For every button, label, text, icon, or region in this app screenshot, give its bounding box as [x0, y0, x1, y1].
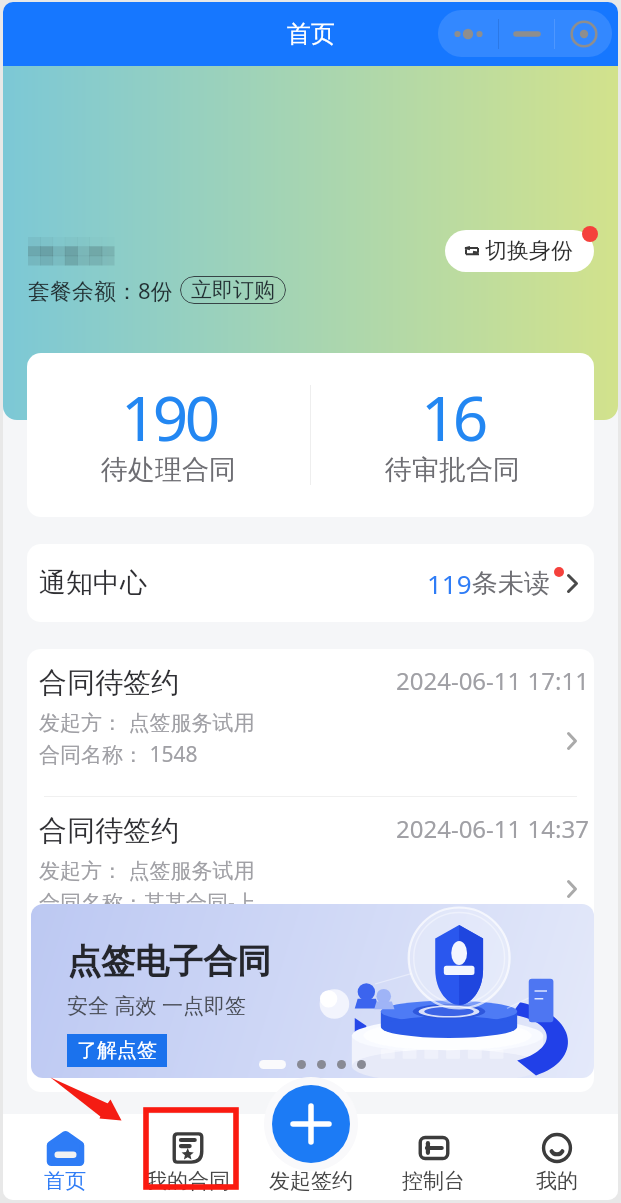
staticText: 合同名称：某某合同-下: [39, 1036, 256, 1065]
button[interactable]: 合同待签约: [27, 797, 594, 944]
staticText: 我的合同: [146, 1168, 230, 1194]
button[interactable]: 了解点签: [67, 1034, 167, 1067]
staticText: 119: [427, 566, 472, 601]
staticText: 合同待签约: [39, 961, 179, 996]
staticText: 2024-06-11 17:11: [396, 664, 589, 697]
staticText: 我的: [536, 1168, 578, 1194]
button[interactable]: Close: [555, 10, 612, 57]
button[interactable]: 发起签约: [249, 1114, 372, 1200]
staticText: 合同名称： 1548: [39, 740, 198, 769]
staticText: 2024-06-10 09:22: [396, 960, 589, 993]
staticText: 套餐余额：8份: [28, 275, 173, 305]
button[interactable]: 控制台: [372, 1114, 495, 1200]
button[interactable]: 16: [311, 353, 594, 517]
staticText: 通知中心: [39, 566, 147, 600]
button[interactable]: 发起签约: [272, 1085, 350, 1163]
staticText: 切换身份: [485, 237, 573, 265]
button[interactable]: 点签电子合同: [31, 904, 594, 1078]
button[interactable]: 立即订购: [180, 276, 286, 304]
staticText: 待处理合同: [101, 453, 236, 487]
staticText: 待审批合同: [385, 453, 520, 487]
staticText: 了解点签: [77, 1038, 157, 1063]
button[interactable]: 我的合同: [126, 1114, 249, 1200]
staticText: 16: [421, 375, 485, 459]
staticText: 首页: [287, 19, 335, 49]
staticText: 条未读: [472, 567, 550, 600]
button[interactable]: 通知中心: [27, 544, 594, 622]
staticText: 合同待签约: [39, 665, 179, 700]
staticText: 发起方： 点签服务试用: [39, 708, 255, 737]
button[interactable]: More: [438, 10, 498, 57]
staticText: 发起方： 点签服务试用: [39, 1004, 255, 1033]
staticText: 合同待签约: [39, 813, 179, 848]
button[interactable]: 190: [27, 353, 310, 517]
staticText: 发起方： 点签服务试用: [39, 856, 255, 885]
staticText: 控制台: [402, 1168, 465, 1194]
button[interactable]: 首页: [3, 1114, 126, 1200]
staticText: 190: [121, 375, 217, 459]
button[interactable]: 我的: [495, 1114, 618, 1200]
button[interactable]: 合同待签约: [27, 649, 594, 796]
staticText: 发起签约: [269, 1168, 353, 1194]
staticText: 2024-06-11 14:37: [396, 812, 589, 845]
staticText: 立即订购: [191, 277, 275, 303]
staticText: 合同名称：某某合同-上: [39, 888, 256, 917]
staticText: 安全 高效 一点即签: [67, 991, 246, 1020]
staticText: 首页: [44, 1168, 86, 1194]
button[interactable]: 合同待签约: [27, 945, 594, 1092]
button[interactable]: 切换身份: [445, 230, 594, 272]
staticText: 点签电子合同: [67, 940, 271, 983]
button[interactable]: Minimize: [499, 10, 554, 57]
